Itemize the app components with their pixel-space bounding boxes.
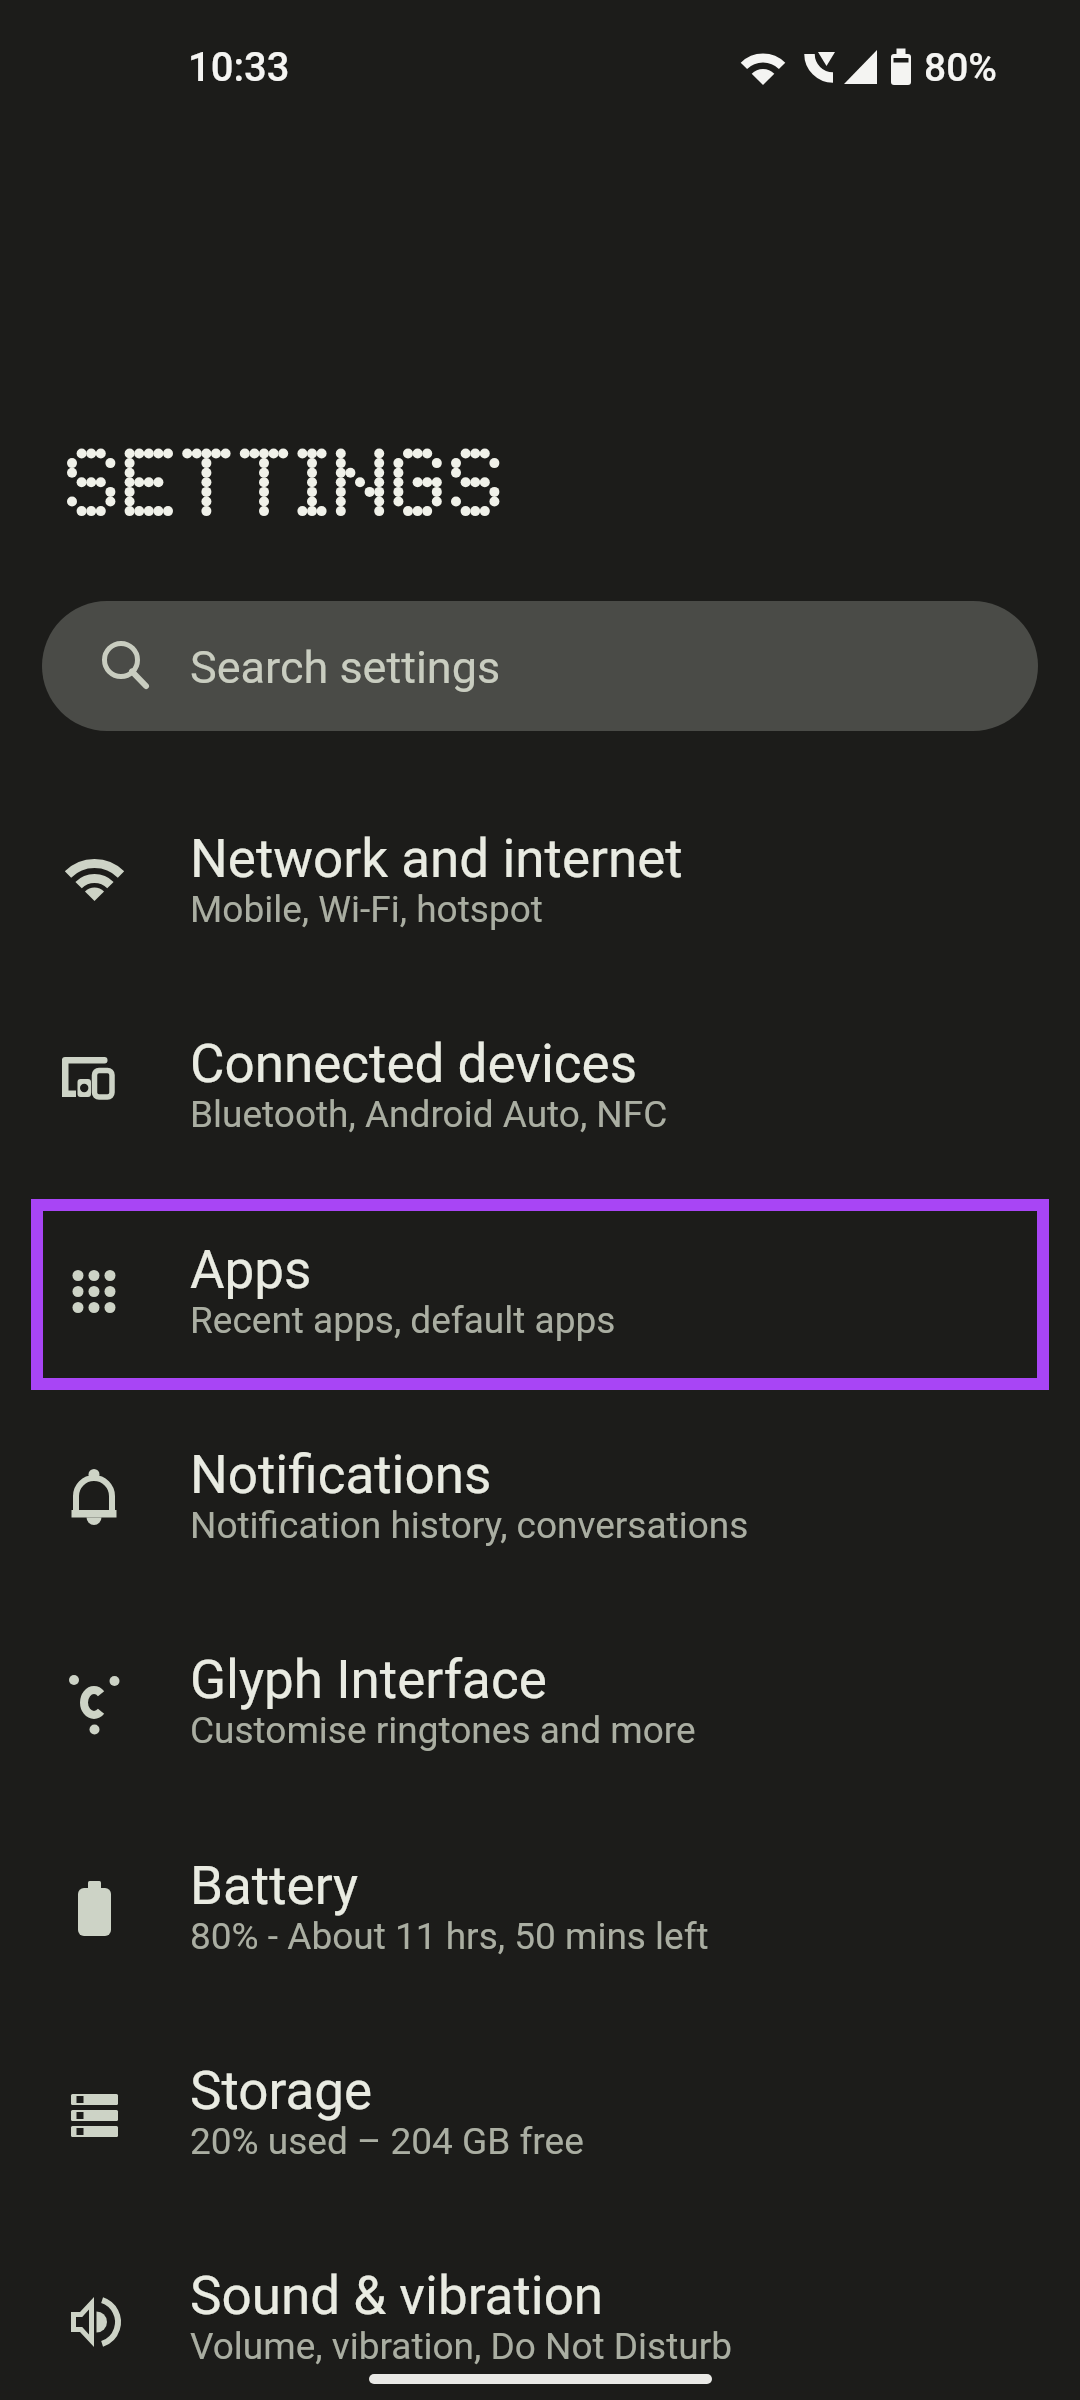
staticText: Notifications [190,1444,492,1506]
staticText: Battery [190,1855,359,1917]
button[interactable]: Apps [0,1194,1080,1399]
staticText: Network and internet [190,828,683,890]
button[interactable]: Connected devices [0,988,1080,1193]
button[interactable]: Storage [0,2015,1080,2220]
staticText: Storage [190,2060,373,2122]
staticText: Connected devices [190,1033,638,1095]
staticText: Notification history, conversations [190,1504,749,1547]
staticText: Glyph Interface [190,1649,547,1711]
staticText: Volume, vibration, Do Not Disturb [190,2325,733,2368]
button[interactable]: Battery [0,1810,1080,2015]
staticText: 80% - About 11 hrs, 50 mins left [190,1915,709,1958]
staticText: Customise ringtones and more [190,1709,696,1752]
button[interactable]: Notifications [0,1399,1080,1604]
staticText: 10:33 [188,44,290,91]
staticText: 80% [924,45,997,91]
button[interactable]: Search settings [42,601,1038,731]
staticText: Apps [190,1239,312,1301]
staticText: Sound & vibration [190,2265,604,2327]
staticText: Mobile, Wi-Fi, hotspot [190,888,543,931]
button[interactable]: Network and internet [0,783,1080,988]
staticText: 20% used – 204 GB free [190,2120,584,2163]
staticText: Recent apps, default apps [190,1299,616,1342]
staticText: Bluetooth, Android Auto, NFC [190,1093,668,1136]
button[interactable]: Sound & vibration [0,2220,1080,2400]
staticText: Search settings [190,641,501,694]
button[interactable]: Glyph Interface [0,1604,1080,1809]
